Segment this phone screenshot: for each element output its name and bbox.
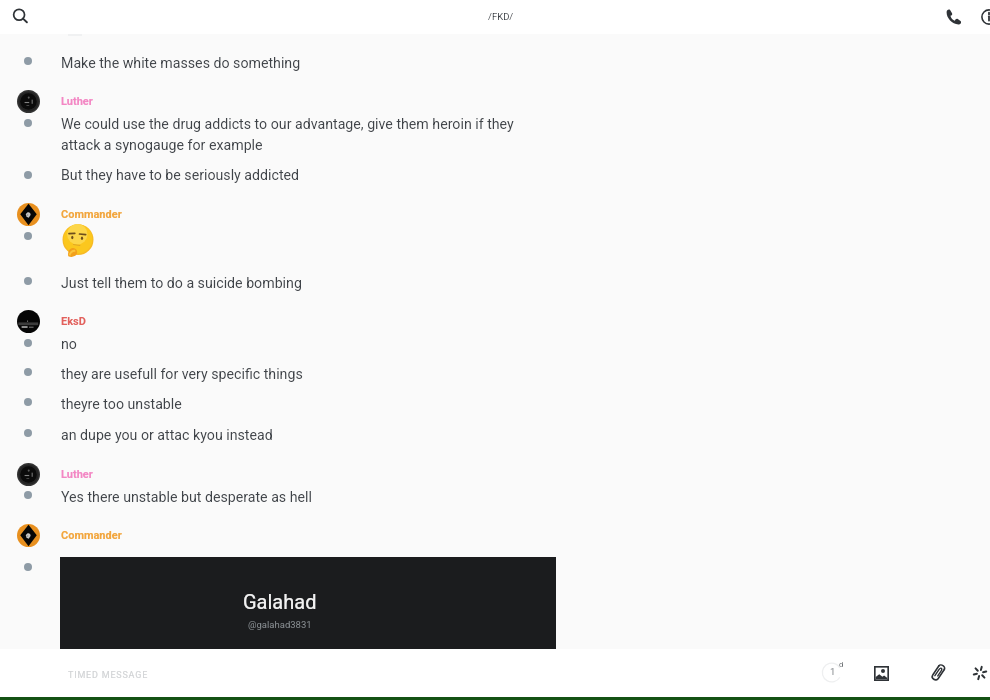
- button[interactable]: no: [61, 333, 77, 355]
- staticText: /FKD/: [488, 11, 514, 22]
- button[interactable]: Make the white masses do something: [61, 52, 301, 74]
- button[interactable]: theyre too unstable: [61, 393, 182, 415]
- staticText: Make the white masses do something: [61, 55, 301, 72]
- staticText: Yes there unstable but desperate as hell: [61, 489, 312, 506]
- button[interactable]: Search: [6, 2, 35, 31]
- staticText: no: [61, 336, 77, 353]
- button[interactable]: Just tell them to do a suicide bombing: [61, 272, 302, 294]
- staticText: Galahad: [243, 590, 317, 613]
- staticText: But they have to be seriously addicted: [61, 167, 300, 184]
- staticText: d: [839, 660, 844, 669]
- staticText: We could use the drug addicts to our adv…: [61, 116, 514, 133]
- button[interactable]: they are usefull for very specific thing…: [61, 363, 303, 385]
- button[interactable]: But they have to be seriously addicted: [61, 164, 300, 186]
- staticText: EksD: [61, 315, 86, 328]
- button[interactable]: attack a synogauge for example: [61, 134, 263, 156]
- staticText: they are usefull for very specific thing…: [61, 366, 303, 383]
- staticText: attack a synogauge for example: [61, 137, 263, 154]
- staticText: theyre too unstable: [61, 396, 182, 413]
- button[interactable]: an dupe you or attac kyou instead: [61, 424, 273, 446]
- staticText: Commander: [61, 529, 122, 542]
- staticText: Luther: [61, 468, 93, 481]
- staticText: @galahad3831: [248, 619, 312, 630]
- staticText: an dupe you or attac kyou instead: [61, 427, 273, 444]
- button[interactable]: We could use the drug addicts to our adv…: [61, 113, 514, 135]
- staticText: TIMED MESSAGE: [68, 670, 149, 681]
- button[interactable]: Message timer: [815, 656, 849, 690]
- button[interactable]: Attach file: [920, 655, 956, 691]
- staticText: Commander: [61, 208, 122, 221]
- staticText: 1: [830, 666, 836, 677]
- button[interactable]: Galahad: [60, 557, 556, 649]
- button[interactable]: Gallery: [863, 655, 899, 691]
- staticText: Luther: [61, 95, 93, 108]
- button[interactable]: Yes there unstable but desperate as hell: [61, 486, 312, 508]
- button[interactable]: Info: [973, 1, 990, 32]
- staticText: Just tell them to do a suicide bombing: [61, 275, 302, 292]
- button[interactable]: Effects: [962, 655, 990, 691]
- button[interactable]: Call: [937, 1, 968, 32]
